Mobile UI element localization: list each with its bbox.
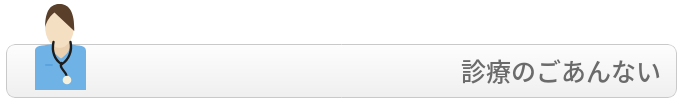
other: Doctor bbox=[30, 0, 92, 96]
staticText: 診療のごあんない bbox=[461, 52, 662, 88]
button[interactable]: 診療のごあんない bbox=[6, 44, 677, 98]
